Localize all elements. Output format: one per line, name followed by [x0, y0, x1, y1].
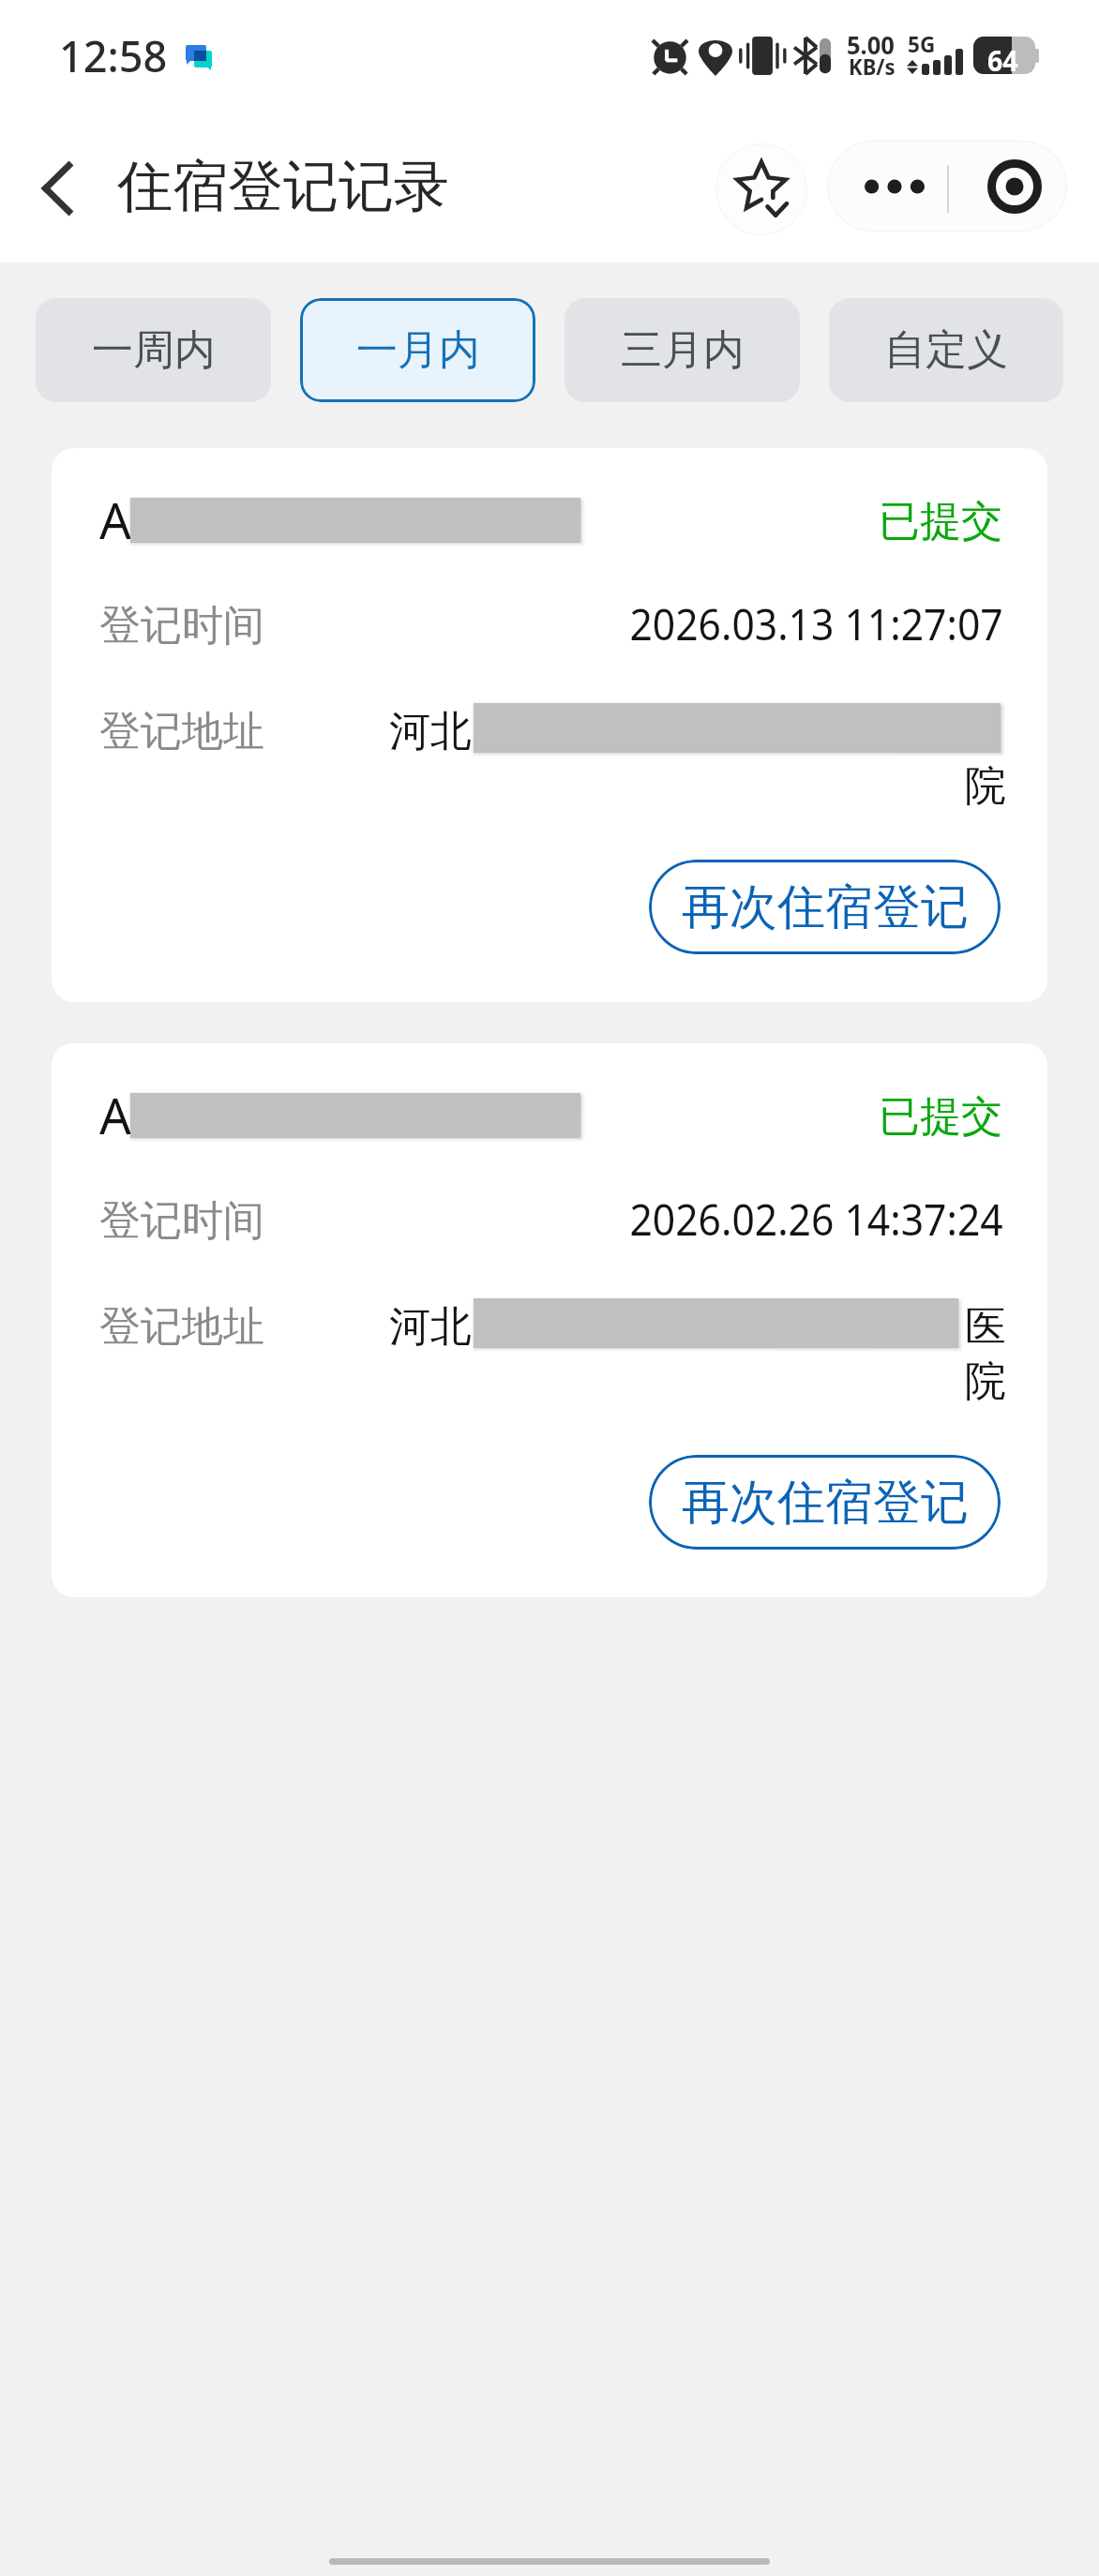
button[interactable]: 一月内 — [300, 298, 535, 402]
staticText: 5G — [908, 28, 936, 59]
button[interactable]: Close mini program — [961, 141, 1067, 232]
staticText: KB/s — [849, 51, 895, 82]
button[interactable]: 再次住宿登记 — [649, 1455, 1001, 1550]
button[interactable]: 再次住宿登记 — [649, 860, 1001, 954]
staticText: A — [99, 486, 131, 553]
button[interactable]: Favourite — [715, 143, 807, 235]
staticText: 2026.02.26 14:37:24 — [630, 1190, 1003, 1249]
button[interactable]: 自定义 — [829, 298, 1063, 402]
staticText: 再次住宿登记 — [682, 1473, 969, 1533]
staticText: 自定义 — [884, 324, 1008, 376]
staticText: 2026.03.13 11:27:07 — [630, 594, 1003, 653]
staticText: 一月内 — [356, 324, 480, 376]
button[interactable]: Back — [20, 151, 95, 226]
staticText: 已提交 — [879, 1091, 1002, 1143]
button[interactable]: A — [52, 1043, 1047, 1597]
staticText: 院 — [965, 760, 1006, 812]
staticText: 一周内 — [92, 324, 216, 376]
button[interactable]: 一周内 — [36, 298, 271, 402]
button[interactable]: More options — [827, 141, 961, 232]
staticText: 登记地址 — [99, 1301, 264, 1353]
staticText: 河北 — [389, 706, 472, 757]
staticText: 12:58 — [59, 27, 168, 84]
staticText: 已提交 — [879, 496, 1002, 547]
staticText: 登记时间 — [99, 600, 264, 651]
staticText: 住宿登记记录 — [117, 152, 449, 221]
staticText: 河北 — [389, 1301, 472, 1353]
staticText: 64 — [987, 41, 1019, 80]
button[interactable]: A — [52, 448, 1047, 1002]
button[interactable]: 三月内 — [565, 298, 800, 402]
staticText: 再次住宿登记 — [682, 877, 969, 937]
staticText: 登记时间 — [99, 1195, 264, 1247]
staticText: 院 — [965, 1355, 1006, 1407]
staticText: 5.00 — [847, 28, 895, 61]
staticText: 登记地址 — [99, 706, 264, 757]
staticText: 医 — [965, 1301, 1006, 1353]
staticText: 三月内 — [621, 324, 745, 376]
staticText: A — [99, 1081, 131, 1148]
